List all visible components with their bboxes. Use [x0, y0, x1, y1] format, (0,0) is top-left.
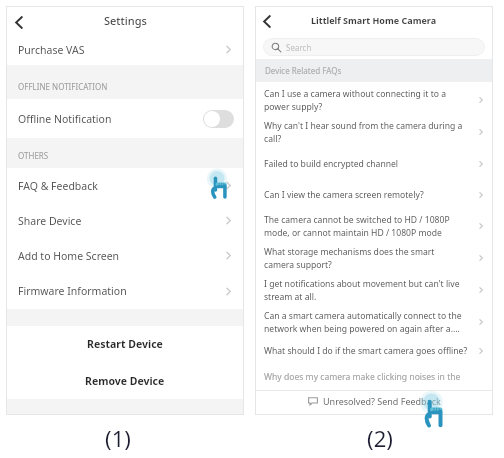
button[interactable]: Firmware Information: [6, 273, 244, 309]
staticText: OFFLINE NOTIFICATION: [18, 81, 108, 92]
staticText: Add to Home Screen: [18, 249, 120, 263]
staticText: What should I do if the smart camera goe…: [264, 345, 471, 357]
staticText: Can a smart camera automatically connect…: [264, 310, 471, 335]
button[interactable]: Can I use a camera without connecting it…: [255, 84, 493, 116]
button[interactable]: What storage mechanisms does the smart c…: [255, 242, 493, 274]
staticText: Unresolved? Send Feedback: [323, 395, 441, 407]
button[interactable]: What should I do if the smart camera goe…: [255, 338, 493, 364]
button[interactable]: Search: [263, 38, 485, 56]
staticText: I get notifications about movement but c…: [264, 278, 471, 303]
staticText: Settings: [104, 13, 147, 28]
button[interactable]: Can a smart camera automatically connect…: [255, 306, 493, 338]
staticText: Restart Device: [87, 337, 163, 351]
staticText: Device Related FAQs: [265, 65, 342, 76]
staticText: Firmware Information: [18, 284, 127, 298]
staticText: What storage mechanisms does the smart c…: [264, 246, 471, 271]
staticText: Failed to build encrypted channel: [264, 158, 471, 170]
button[interactable]: The camera cannot be switched to HD / 10…: [255, 210, 493, 242]
staticText: (1): [96, 423, 140, 453]
staticText: Share Device: [18, 214, 82, 228]
button[interactable]: I get notifications about movement but c…: [255, 274, 493, 306]
staticText: Remove Device: [85, 374, 165, 388]
button[interactable]: Why can't I hear sound from the camera d…: [255, 116, 493, 148]
button[interactable]: Back: [258, 12, 276, 30]
button[interactable]: FAQ & Feedback: [6, 168, 244, 203]
staticText: Why does my camera make clicking noises …: [264, 371, 471, 383]
button[interactable]: Can I view the camera screen remotely?: [255, 179, 493, 210]
button[interactable]: Restart Device: [6, 326, 244, 362]
staticText: Search: [286, 42, 312, 53]
staticText: Littlelf Smart Home Camera: [311, 14, 437, 26]
staticText: Can I use a camera without connecting it…: [264, 88, 471, 113]
button[interactable]: Offline Notification: [6, 99, 244, 138]
button[interactable]: Share Device: [6, 203, 244, 238]
button[interactable]: Failed to build encrypted channel: [255, 148, 493, 179]
staticText: Purchase VAS: [18, 43, 85, 57]
staticText: FAQ & Feedback: [18, 179, 98, 193]
staticText: (2): [358, 423, 402, 453]
staticText: Offline Notification: [18, 112, 112, 126]
button[interactable]: Back: [10, 13, 28, 31]
staticText: Can I view the camera screen remotely?: [264, 189, 471, 201]
button[interactable]: Add to Home Screen: [6, 238, 244, 273]
button[interactable]: Why does my camera make clicking noises …: [255, 364, 493, 390]
button[interactable]: Remove Device: [6, 362, 244, 399]
staticText: OTHERS: [18, 150, 49, 161]
button[interactable]: Unresolved? Send Feedback: [255, 390, 493, 415]
button[interactable]: Purchase VAS: [6, 34, 244, 65]
staticText: The camera cannot be switched to HD / 10…: [264, 214, 471, 239]
staticText: Why can't I hear sound from the camera d…: [264, 120, 471, 145]
